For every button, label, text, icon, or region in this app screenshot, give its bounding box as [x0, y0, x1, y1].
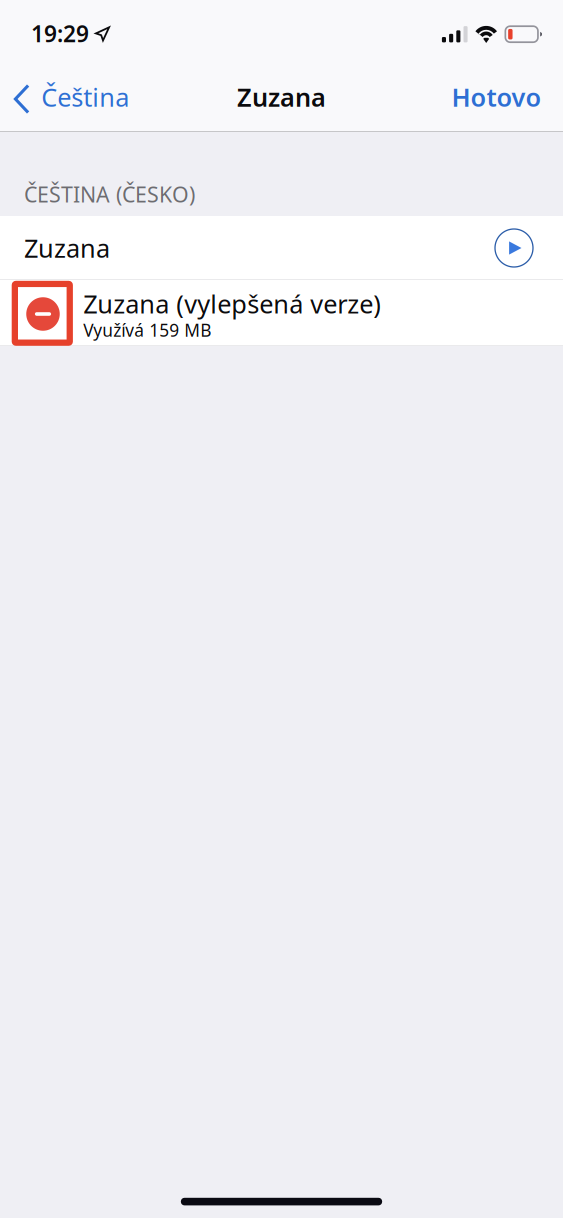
staticText: Hotovo [451, 80, 541, 114]
staticText: ČEŠTINA (ČESKO) [24, 180, 195, 208]
staticText: Zuzana [237, 80, 326, 114]
button[interactable]: Zuzana [0, 216, 563, 280]
staticText: Zuzana (vylepšená verze) [83, 287, 381, 320]
staticText: 19:29 [31, 18, 89, 48]
button[interactable]: Play sample [486, 220, 542, 276]
button[interactable]: Remove Zuzana (vylepšená verze) [16, 282, 69, 344]
button[interactable]: Hotovo [437, 62, 563, 132]
staticText: Využívá 159 MB [83, 319, 211, 342]
button[interactable]: Čeština [0, 62, 139, 132]
staticText: Zuzana [24, 231, 110, 265]
staticText: Čeština [41, 80, 129, 114]
